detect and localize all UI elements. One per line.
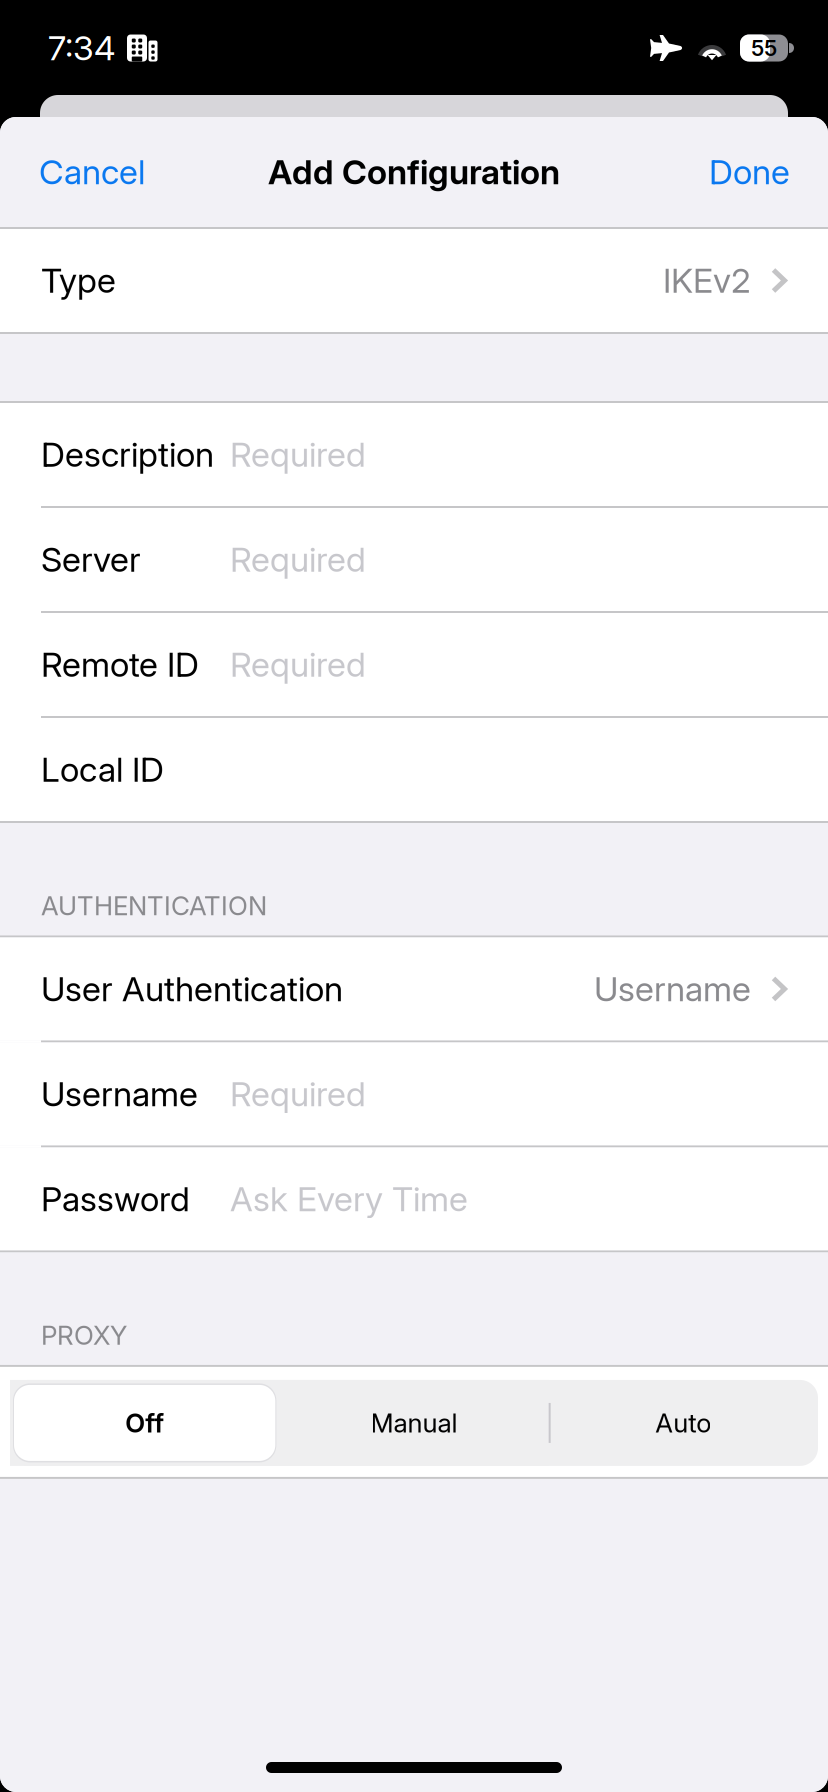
button[interactable]: Off: [10, 1380, 279, 1466]
button[interactable]: User Authentication: [0, 937, 828, 1040]
staticText: Description: [41, 434, 214, 475]
button[interactable]: Type: [0, 229, 828, 332]
staticText: Done: [709, 151, 790, 192]
staticText: Required: [230, 644, 366, 685]
staticText: AUTHENTICATION: [41, 890, 267, 921]
staticText: Local ID: [41, 749, 164, 790]
button[interactable]: Cancel: [0, 117, 165, 227]
staticText: Required: [230, 434, 366, 475]
button[interactable]: Done: [689, 117, 828, 227]
staticText: Username: [41, 1073, 198, 1114]
staticText: Ask Every Time: [230, 1178, 468, 1219]
staticText: Server: [41, 539, 141, 580]
staticText: Manual: [370, 1407, 457, 1439]
staticText: 7:34: [48, 27, 115, 68]
button[interactable]: Manual: [279, 1380, 549, 1466]
staticText: User Authentication: [41, 968, 343, 1009]
staticText: Auto: [655, 1407, 711, 1439]
staticText: Password: [41, 1178, 190, 1219]
staticText: Required: [230, 539, 366, 580]
staticText: Remote ID: [41, 644, 199, 685]
staticText: Cancel: [39, 151, 145, 192]
staticText: Required: [230, 1073, 366, 1114]
staticText: Off: [125, 1407, 164, 1439]
button[interactable]: Auto: [549, 1380, 818, 1466]
staticText: 55: [751, 35, 777, 61]
staticText: Type: [41, 260, 116, 301]
staticText: PROXY: [41, 1319, 127, 1351]
staticText: Username: [594, 968, 751, 1009]
staticText: IKEv2: [663, 260, 751, 301]
staticText: Add Configuration: [268, 151, 560, 192]
